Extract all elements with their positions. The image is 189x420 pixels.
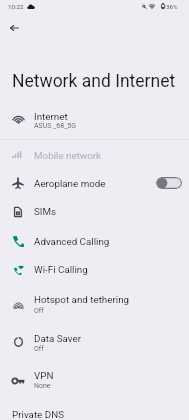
- staticText: Mobile network: [34, 150, 102, 161]
- button[interactable]: VPN: [0, 361, 189, 399]
- button[interactable]: Private DNS: [0, 400, 189, 420]
- button[interactable]: Back: [3, 17, 25, 39]
- button[interactable]: Internet: [0, 102, 189, 139]
- staticText: Off: [34, 307, 44, 315]
- button[interactable]: Aeroplane mode: [0, 169, 189, 196]
- staticText: Advanced Calling: [34, 236, 110, 247]
- button[interactable]: SIMs: [0, 197, 189, 225]
- staticText: Internet: [34, 111, 68, 122]
- button[interactable]: Advanced Calling: [0, 226, 189, 254]
- staticText: Data Saver: [34, 333, 81, 344]
- staticText: Wi-Fi Calling: [34, 264, 88, 275]
- staticText: None: [34, 382, 51, 390]
- staticText: Hotspot and tethering: [34, 294, 130, 305]
- staticText: 36%: [166, 3, 178, 10]
- button[interactable]: Data Saver: [0, 323, 189, 360]
- staticText: ASUS _68_5G: [34, 122, 77, 130]
- staticText: SIMs: [34, 206, 57, 217]
- staticText: Private DNS: [12, 409, 64, 420]
- staticText: VPN: [34, 370, 54, 381]
- staticText: 10:22: [8, 3, 24, 10]
- button[interactable]: Hotspot and tethering: [0, 285, 189, 322]
- staticText: Off: [34, 345, 44, 353]
- staticText: Aeroplane mode: [34, 178, 106, 189]
- button[interactable]: Wi-Fi Calling: [0, 255, 189, 284]
- staticText: Network and Internet: [12, 71, 176, 92]
- button[interactable]: Aeroplane mode toggle: [156, 177, 182, 189]
